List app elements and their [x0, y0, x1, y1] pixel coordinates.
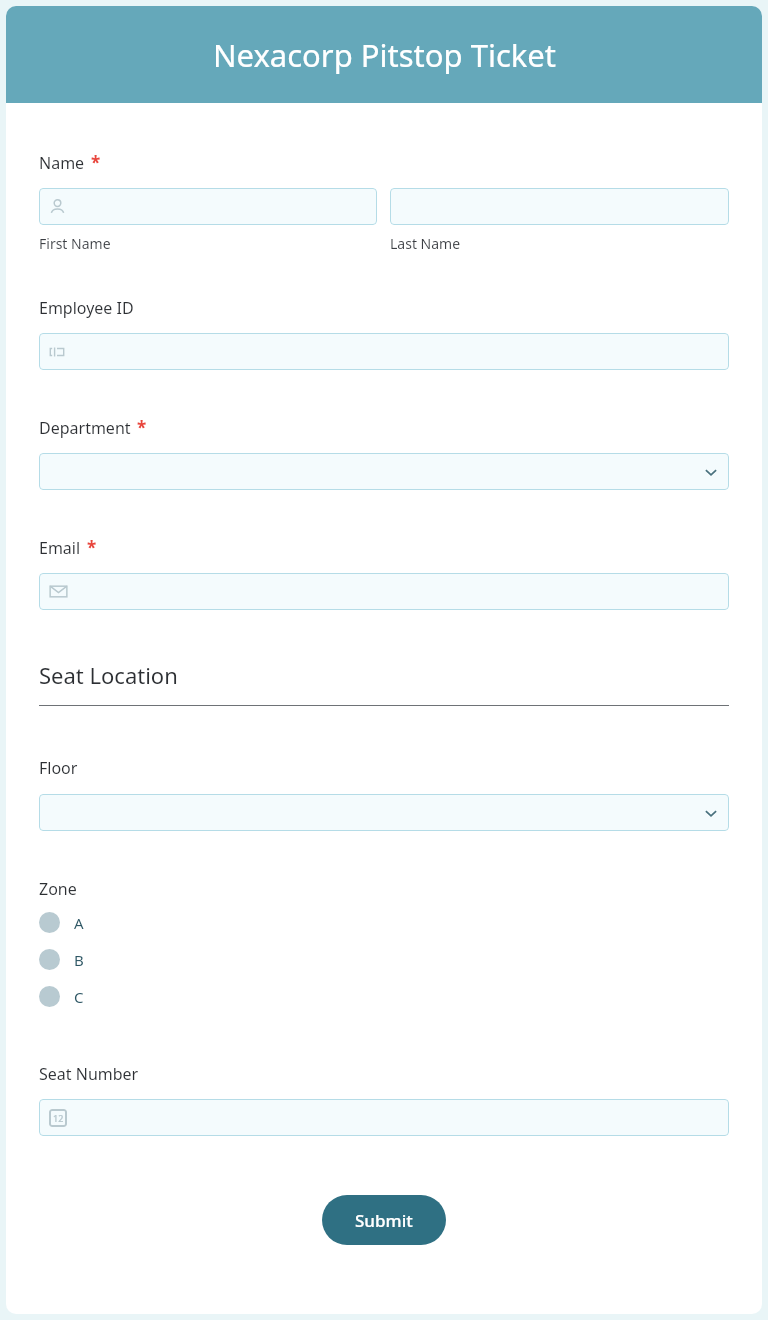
staticText: *: [137, 416, 147, 439]
staticText: *: [91, 151, 101, 174]
staticText: C: [74, 987, 84, 1007]
staticText: Name: [39, 152, 85, 174]
staticText: Department: [39, 417, 131, 439]
staticText: *: [87, 536, 97, 559]
button[interactable]: C: [39, 980, 729, 1013]
staticText: Last Name: [390, 234, 461, 253]
staticText: A: [74, 913, 84, 933]
button[interactable]: [39, 188, 377, 225]
staticText: Seat Location: [39, 660, 178, 690]
staticText: Nexacorp Pitstop Ticket: [213, 34, 556, 76]
button[interactable]: A: [39, 906, 729, 939]
button[interactable]: B: [39, 943, 729, 976]
button[interactable]: 12: [39, 1099, 729, 1136]
staticText: B: [74, 950, 84, 970]
staticText: Seat Number: [39, 1063, 139, 1085]
button[interactable]: [390, 188, 729, 225]
staticText: Submit: [355, 1209, 413, 1232]
staticText: Email: [39, 537, 81, 559]
button[interactable]: [39, 453, 729, 490]
staticText: Floor: [39, 757, 78, 779]
button[interactable]: [39, 333, 729, 370]
staticText: 12: [53, 1112, 64, 1124]
button[interactable]: Submit: [322, 1195, 446, 1245]
staticText: Employee ID: [39, 297, 134, 319]
staticText: Zone: [39, 878, 77, 900]
staticText: First Name: [39, 234, 111, 253]
button[interactable]: [39, 794, 729, 831]
button[interactable]: [39, 573, 729, 610]
